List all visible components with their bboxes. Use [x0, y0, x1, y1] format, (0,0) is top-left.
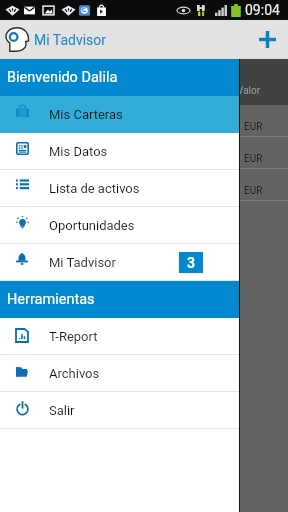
staticText: Archivos — [49, 366, 100, 381]
staticText: 09:04 — [245, 2, 280, 18]
button[interactable]: Mis Carteras — [0, 96, 240, 133]
button[interactable]: Archivos — [0, 355, 240, 392]
staticText: Mis Datos — [49, 144, 108, 159]
button[interactable]: Mis Datos — [0, 133, 240, 170]
staticText: Bienvenido Dalila — [7, 69, 118, 86]
button[interactable]: Salir — [0, 392, 240, 429]
staticText: Lista de activos — [49, 181, 140, 196]
staticText: Oportunidades — [49, 218, 135, 233]
button[interactable]: T-Report — [0, 318, 240, 355]
staticText: Herramientas — [7, 291, 95, 308]
staticText: T-Report — [49, 329, 98, 344]
staticText: EUR — [244, 153, 263, 165]
button[interactable]: Open navigation menu — [0, 20, 34, 59]
staticText: 3 — [187, 255, 196, 271]
staticText: Mi Tadvisor — [34, 32, 107, 48]
button[interactable]: Add — [246, 20, 288, 59]
staticText: EUR — [244, 121, 263, 133]
button[interactable]: Oportunidades — [0, 207, 240, 244]
staticText: Valor — [237, 85, 261, 97]
staticText: Mi Tadvisor — [49, 255, 116, 270]
button[interactable]: Lista de activos — [0, 170, 240, 207]
staticText: EUR — [244, 185, 263, 197]
staticText: Salir — [49, 403, 75, 418]
button[interactable]: Mi Tadvisor — [0, 244, 240, 281]
staticText: Mis Carteras — [49, 107, 123, 122]
